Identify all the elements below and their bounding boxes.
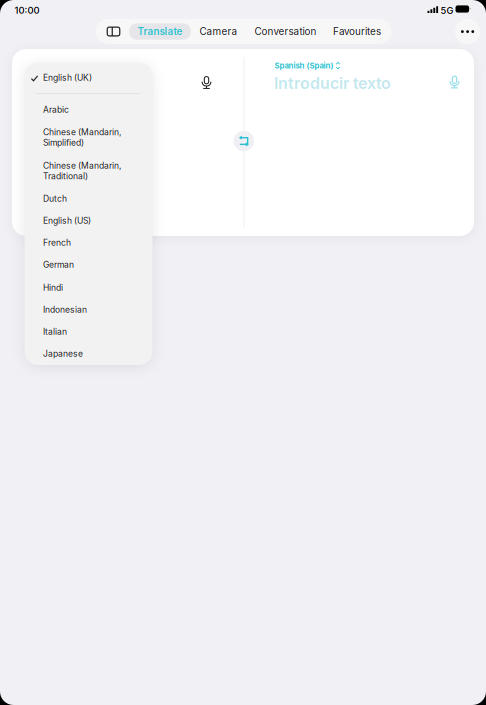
staticText: French — [43, 238, 71, 248]
staticText: Introducir texto — [274, 73, 391, 93]
staticText: Favourites — [333, 25, 381, 37]
button[interactable]: Japanese — [24, 346, 152, 368]
staticText: Italian — [43, 327, 67, 337]
button[interactable]: Dutch — [24, 191, 152, 213]
button[interactable]: French — [24, 235, 152, 257]
button[interactable]: Chinese (Mandarin, — [24, 124, 152, 157]
staticText: Translate — [137, 25, 182, 37]
button[interactable]: More options — [455, 19, 480, 44]
staticText: 10:00 — [14, 4, 39, 16]
staticText: Chinese (Mandarin, — [43, 161, 121, 171]
staticText: Indonesian — [43, 305, 87, 315]
button[interactable]: Chinese (Mandarin, — [24, 158, 152, 191]
button[interactable]: Camera — [191, 19, 246, 44]
button[interactable]: English (UK) — [24, 70, 152, 97]
staticText: Simplified) — [43, 137, 84, 148]
button[interactable]: Conversation — [246, 19, 325, 44]
staticText: Spanish (Spain) — [274, 61, 333, 70]
button[interactable]: Show sidebar — [98, 19, 129, 44]
button[interactable]: German — [24, 257, 152, 279]
staticText: Dutch — [43, 194, 67, 204]
staticText: Japanese — [43, 349, 83, 359]
button[interactable]: English (US) — [24, 213, 152, 235]
button[interactable]: Hindi — [24, 280, 152, 302]
button[interactable]: Translate — [129, 23, 191, 40]
staticText: German — [43, 260, 74, 270]
button[interactable]: Spanish (Spain) — [274, 61, 340, 70]
button[interactable]: Arabic — [24, 102, 152, 124]
staticText: Chinese (Mandarin, — [43, 127, 121, 137]
button[interactable]: Italian — [24, 324, 152, 346]
button[interactable]: Swap languages — [233, 131, 254, 151]
button[interactable]: Favourites — [325, 19, 389, 44]
staticText: Arabic — [43, 105, 69, 115]
button[interactable]: Record Spanish — [447, 74, 461, 90]
button[interactable]: Indonesian — [24, 302, 152, 324]
staticText: Traditional) — [43, 171, 88, 181]
button[interactable]: Record English — [199, 74, 213, 90]
staticText: English (US) — [43, 216, 91, 226]
staticText: Camera — [199, 25, 237, 37]
staticText: Conversation — [254, 25, 316, 37]
staticText: Hindi — [43, 283, 63, 293]
staticText: 5G — [440, 5, 453, 16]
staticText: English (UK) — [43, 73, 92, 83]
